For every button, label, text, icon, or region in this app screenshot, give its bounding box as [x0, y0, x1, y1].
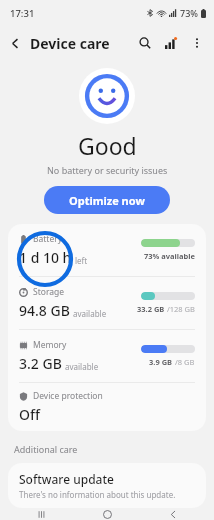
staticText: Additional care: [14, 443, 78, 455]
button[interactable]: Recent apps: [16, 508, 66, 520]
staticText: 33.2 GB: [137, 304, 165, 314]
button[interactable]: Back: [0, 28, 30, 58]
staticText: 1 d 10 h: [19, 248, 72, 267]
staticText: 73% available: [144, 251, 195, 261]
button[interactable]: Search: [132, 30, 158, 56]
staticText: available: [65, 361, 99, 372]
staticText: /8 GB: [173, 357, 195, 367]
staticText: available: [73, 308, 107, 319]
staticText: Optimize now: [69, 193, 145, 208]
button[interactable]: Software update: [8, 463, 206, 508]
button[interactable]: Storage: [8, 277, 206, 329]
staticText: 3.2 GB: [19, 354, 62, 373]
staticText: No battery or security issues: [47, 164, 168, 176]
staticText: Storage: [33, 286, 65, 298]
button[interactable]: Battery: [8, 224, 206, 276]
staticText: /128 GB: [165, 304, 195, 314]
staticText: left: [75, 255, 88, 266]
staticText: Good: [78, 130, 137, 161]
staticText: 73%: [180, 7, 198, 19]
button[interactable]: Statistics: [158, 30, 184, 56]
staticText: 94.8 GB: [19, 301, 70, 320]
staticText: There's no information about this update…: [19, 489, 176, 500]
staticText: Device care: [30, 34, 110, 53]
button[interactable]: Optimize now: [44, 186, 170, 214]
staticText: Software update: [19, 471, 114, 487]
staticText: Battery: [33, 233, 63, 245]
staticText: Off: [19, 405, 40, 424]
button[interactable]: Device protection: [8, 383, 206, 431]
staticText: 17:31: [10, 7, 35, 20]
staticText: Device protection: [33, 390, 103, 402]
button[interactable]: More options: [184, 30, 210, 56]
button[interactable]: Back: [148, 508, 198, 520]
button[interactable]: Memory: [8, 330, 206, 382]
staticText: Memory: [33, 339, 67, 351]
button[interactable]: Home: [82, 508, 132, 520]
staticText: 3.9 GB: [149, 357, 173, 367]
